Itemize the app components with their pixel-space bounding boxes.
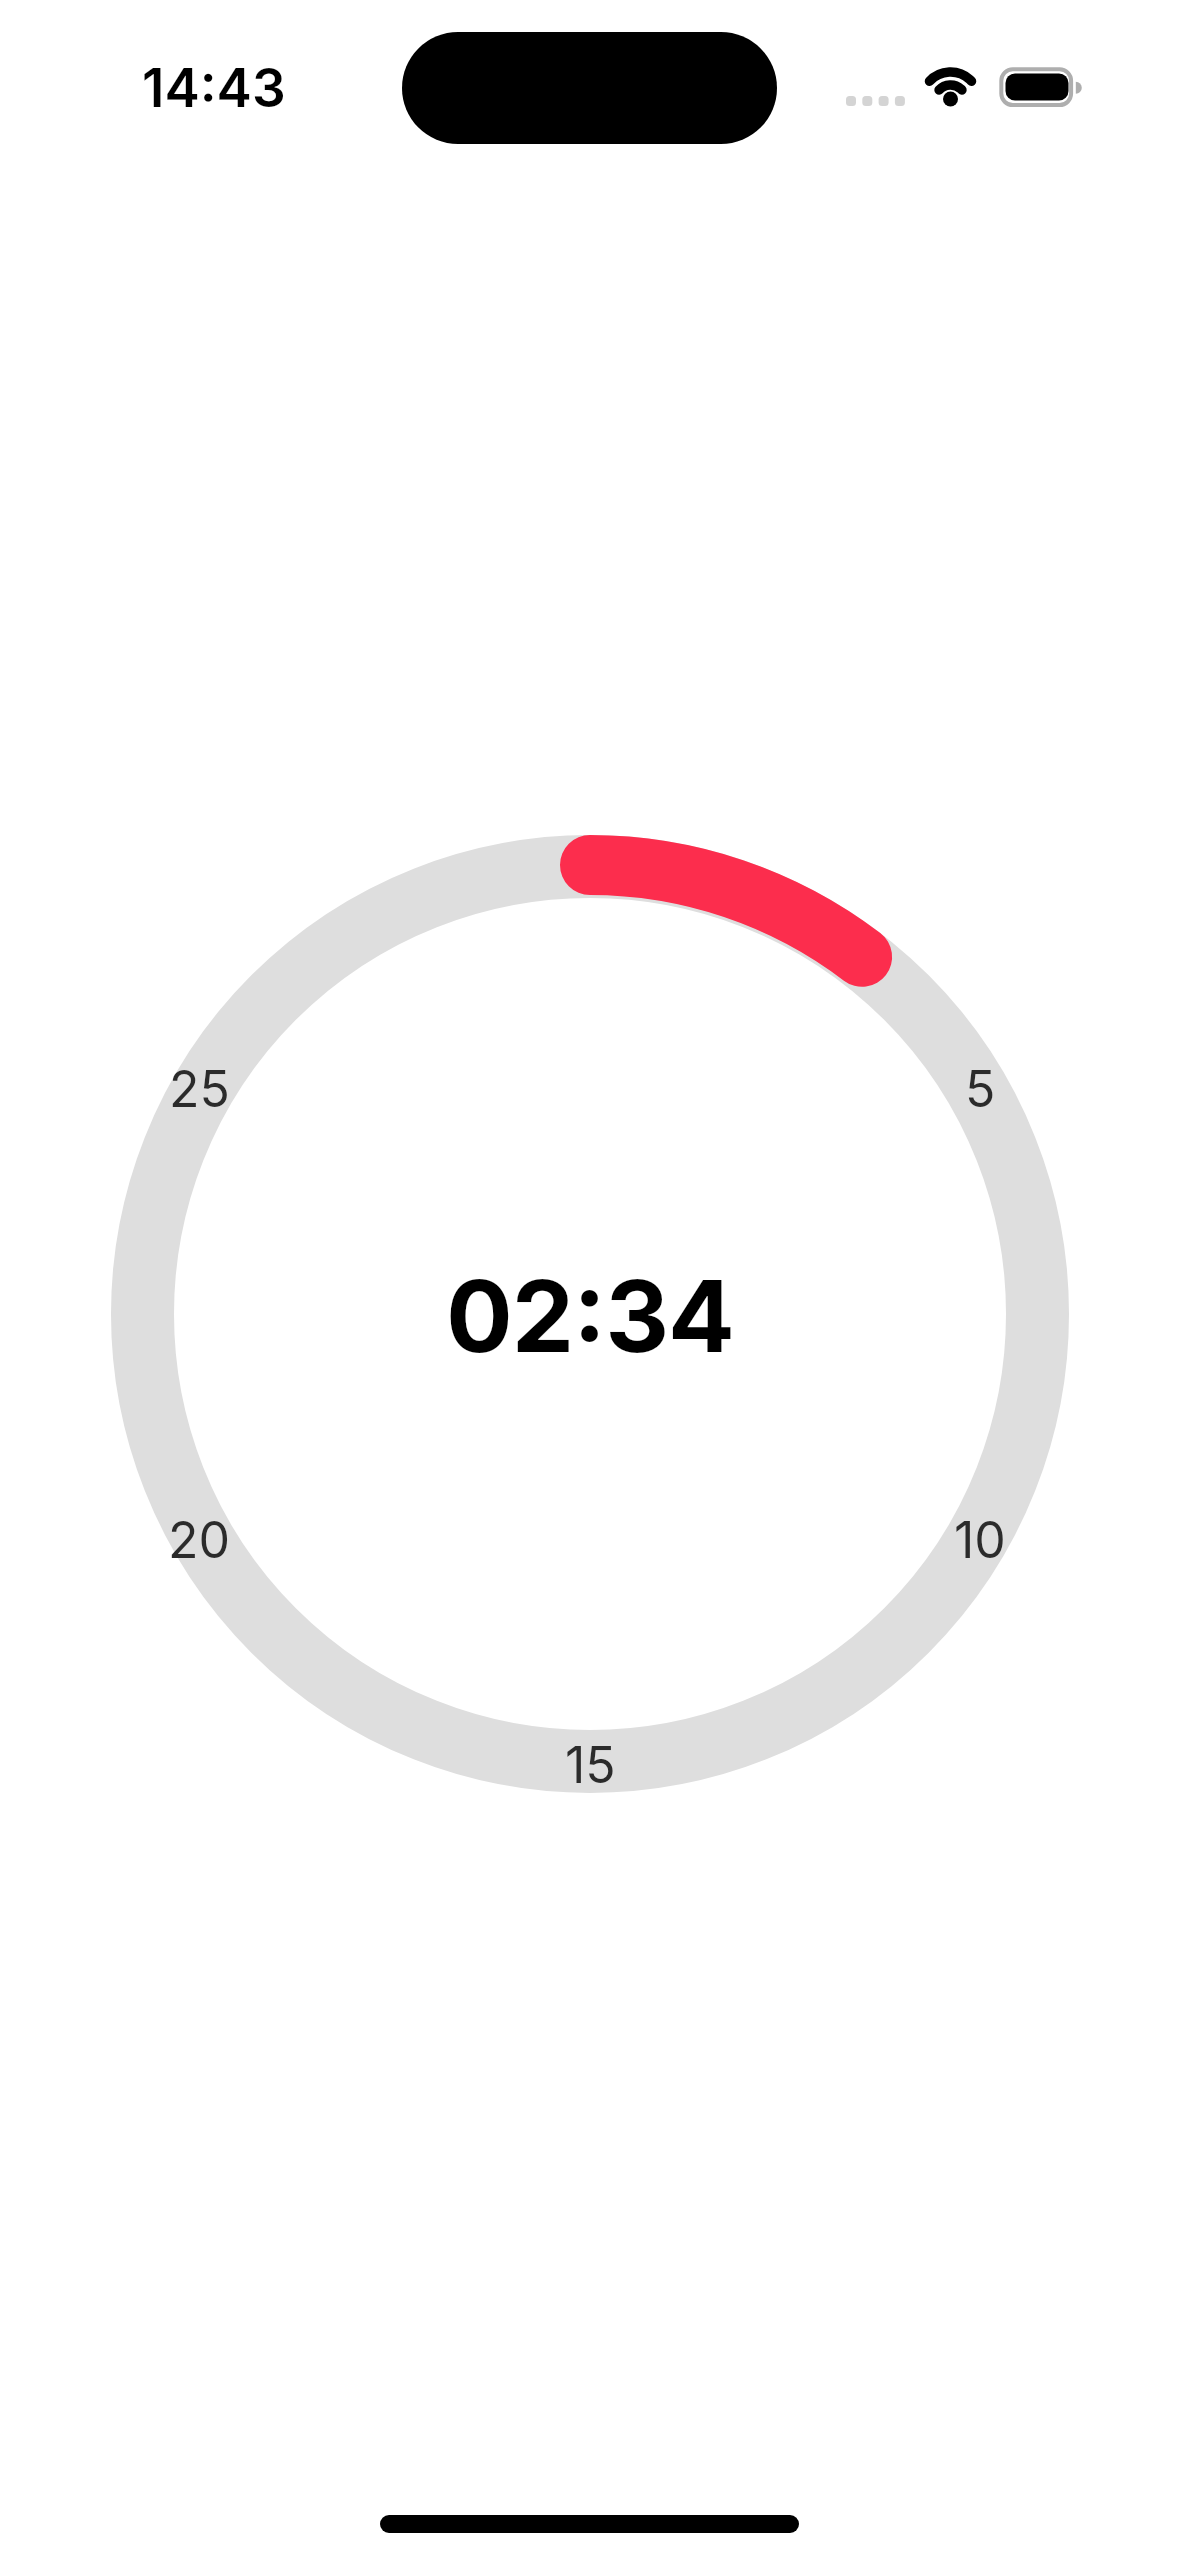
staticText: 25 xyxy=(169,1059,230,1119)
staticText: 10 xyxy=(954,1510,1006,1570)
staticText: 5 xyxy=(965,1059,996,1119)
staticText: 02:34 xyxy=(446,1256,735,1376)
staticText: 20 xyxy=(168,1510,231,1570)
button[interactable] xyxy=(110,834,1070,1794)
staticText: 15 xyxy=(565,1735,616,1795)
staticText: 14:43 xyxy=(142,56,286,120)
